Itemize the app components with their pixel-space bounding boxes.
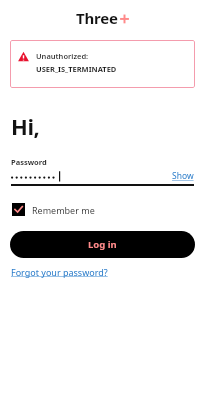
staticText: Password xyxy=(11,157,47,167)
staticText: Three xyxy=(76,8,118,28)
staticText: Hi, xyxy=(11,111,40,141)
staticText: USER_IS_TERMINATED xyxy=(36,64,117,74)
staticText: Log in xyxy=(88,238,117,251)
staticText: Remember me xyxy=(32,204,95,216)
button[interactable]: Forgot your password? xyxy=(11,266,108,278)
staticText: Forgot your password? xyxy=(11,266,108,278)
button[interactable]: Remember me xyxy=(11,201,96,218)
button[interactable]: Log in xyxy=(10,231,195,258)
staticText: Show xyxy=(172,170,194,182)
staticText: Unauthorized: xyxy=(36,51,89,61)
button[interactable]: Show xyxy=(172,170,194,182)
